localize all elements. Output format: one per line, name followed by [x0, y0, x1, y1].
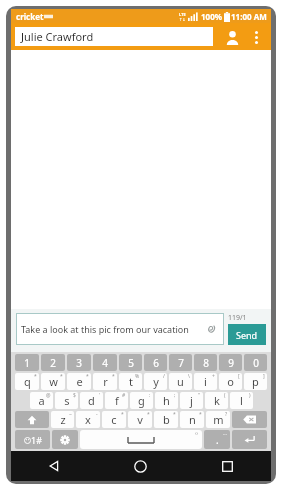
button[interactable]: Shift [15, 411, 49, 428]
staticText: z [60, 412, 66, 427]
staticText: 6 [153, 356, 159, 370]
staticText: w [49, 374, 58, 389]
staticText: * [86, 373, 89, 380]
button[interactable]: Take a look at this pic from our vacatio… [16, 313, 224, 345]
staticText: q [24, 374, 31, 389]
staticText: f [115, 393, 119, 408]
staticText: * [121, 411, 124, 418]
staticText: ↑↓ [179, 17, 186, 22]
button[interactable]: r [93, 373, 117, 390]
button[interactable]: f [105, 392, 128, 409]
staticText: 119/1 [228, 313, 247, 323]
button[interactable]: p [244, 373, 267, 390]
button[interactable]: n [180, 411, 204, 428]
button[interactable]: y [144, 373, 167, 390]
button[interactable]: d [80, 392, 103, 409]
staticText: ? [225, 411, 228, 418]
button[interactable]: Space [80, 430, 202, 449]
staticText: n [189, 412, 196, 427]
button[interactable]: Contacts [219, 24, 245, 50]
staticText: g [138, 393, 145, 408]
button[interactable]: 0 [244, 354, 267, 371]
button[interactable]: Enter [232, 430, 267, 449]
staticText: j [190, 393, 193, 408]
staticText: * [34, 373, 37, 380]
button[interactable]: 7 [169, 354, 192, 371]
staticText: - [96, 411, 98, 418]
button[interactable]: x [76, 411, 100, 428]
staticText: l [240, 393, 243, 408]
button[interactable]: Recent apps [184, 451, 271, 481]
button[interactable]: q [15, 373, 39, 390]
staticText: a [38, 393, 45, 408]
button[interactable]: Keyboard settings [52, 430, 78, 449]
staticText: * [60, 373, 63, 380]
staticText: * [112, 373, 115, 380]
button[interactable]: w [41, 373, 65, 390]
button[interactable]: c [102, 411, 126, 428]
button[interactable]: Send [228, 324, 266, 345]
staticText: b [163, 412, 170, 427]
button[interactable]: 2 [41, 354, 65, 371]
staticText: 7 [178, 356, 184, 370]
staticText: ‹› [195, 430, 199, 437]
button[interactable]: v [128, 411, 152, 428]
button[interactable]: 6 [144, 354, 167, 371]
button[interactable]: g [130, 392, 153, 409]
staticText: ; [174, 392, 176, 399]
staticText: e [76, 374, 83, 389]
staticText: d [88, 393, 95, 408]
staticText: Julie Crawford [21, 29, 94, 44]
staticText: 1# [31, 434, 42, 446]
button[interactable]: Back [11, 451, 97, 481]
button[interactable]: e [67, 373, 91, 390]
staticText: o [227, 374, 234, 389]
staticText: . [216, 433, 219, 447]
staticText: i [204, 374, 207, 389]
staticText: k [214, 393, 220, 408]
staticText: " [198, 392, 201, 399]
button[interactable]: i [194, 373, 217, 390]
staticText: m [213, 412, 224, 427]
button[interactable]: Julie Crawford [15, 27, 213, 46]
button[interactable]: 1 [15, 354, 39, 371]
staticText: @ [46, 392, 51, 399]
button[interactable]: z [51, 411, 74, 428]
button[interactable]: 4 [93, 354, 117, 371]
button[interactable]: 5 [119, 354, 142, 371]
button[interactable]: b [154, 411, 178, 428]
staticText: s [64, 393, 70, 408]
button[interactable]: m [206, 411, 230, 428]
button[interactable]: Home [97, 451, 184, 481]
staticText: 2 [50, 356, 56, 370]
staticText: Send [236, 329, 258, 341]
button[interactable]: o [219, 373, 242, 390]
staticText: + [212, 373, 215, 380]
staticText: # [122, 392, 126, 399]
button[interactable]: Emoji and symbols [15, 430, 50, 449]
button[interactable]: More options [245, 26, 267, 48]
button[interactable]: a [30, 392, 53, 409]
button[interactable]: t [119, 373, 142, 390]
staticText: 5 [128, 356, 134, 370]
button[interactable]: u [169, 373, 192, 390]
staticText: y [153, 374, 159, 389]
button[interactable]: 3 [67, 354, 91, 371]
button[interactable]: k [205, 392, 228, 409]
button[interactable]: s [55, 392, 78, 409]
button[interactable]: l [230, 392, 253, 409]
staticText: ~ [69, 411, 72, 418]
button[interactable]: 8 [194, 354, 217, 371]
button[interactable]: 9 [219, 354, 242, 371]
staticText: : [149, 392, 151, 399]
staticText: 3 [76, 356, 82, 370]
staticText: c [111, 412, 117, 427]
staticText: [ [238, 373, 240, 380]
button[interactable]: j [180, 392, 203, 409]
staticText: * [199, 411, 202, 418]
button[interactable]: Backspace [232, 411, 267, 428]
button[interactable]: Period [204, 430, 230, 449]
staticText: LTE [179, 12, 186, 17]
button[interactable]: Attach [203, 321, 219, 337]
button[interactable]: h [155, 392, 178, 409]
